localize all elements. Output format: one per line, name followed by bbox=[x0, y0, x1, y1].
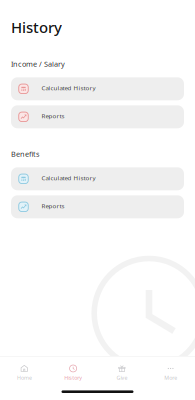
staticText: Calculated History bbox=[41, 84, 95, 92]
staticText: Reports bbox=[41, 202, 64, 210]
staticText: Give bbox=[116, 374, 127, 381]
staticText: Benefits bbox=[11, 149, 40, 159]
button[interactable]: More bbox=[146, 366, 195, 380]
staticText: More bbox=[164, 374, 177, 381]
button[interactable]: Reports bbox=[11, 195, 184, 218]
button[interactable]: Reports bbox=[11, 105, 184, 128]
button[interactable]: Calculated History bbox=[11, 77, 184, 100]
staticText: Home bbox=[17, 374, 32, 381]
button[interactable]: Calculated History bbox=[11, 167, 184, 190]
staticText: Income / Salary bbox=[11, 59, 65, 69]
staticText: History bbox=[11, 17, 62, 37]
staticText: Reports bbox=[41, 112, 64, 120]
button[interactable]: History bbox=[49, 366, 98, 380]
staticText: Calculated History bbox=[41, 174, 95, 182]
button[interactable]: Give bbox=[97, 366, 146, 380]
button[interactable]: Home bbox=[0, 366, 49, 380]
staticText: History bbox=[64, 374, 82, 381]
